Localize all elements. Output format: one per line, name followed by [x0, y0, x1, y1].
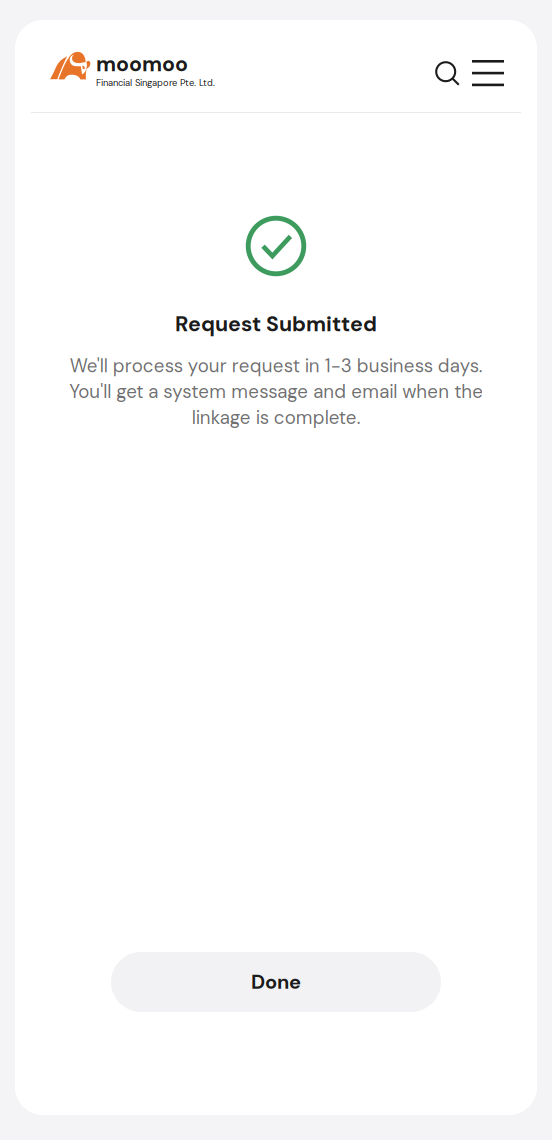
staticText: moomoo: [96, 50, 188, 78]
staticText: Financial Singapore Pte. Ltd.: [96, 77, 215, 89]
staticText: Request Submitted: [175, 310, 377, 338]
staticText: We'll process your request in 1-3 busine…: [69, 354, 483, 430]
button[interactable]: Search: [419, 52, 460, 91]
staticText: Done: [251, 969, 301, 995]
button[interactable]: Menu: [467, 52, 508, 91]
button[interactable]: Done: [111, 952, 441, 1012]
